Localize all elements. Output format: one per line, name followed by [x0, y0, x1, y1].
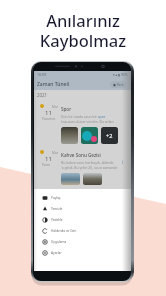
staticText: 'a gittik. Bu şehri 26, uzun zamandır ma… [61, 165, 122, 170]
button[interactable]: Hakkında ve Geri [34, 225, 131, 236]
staticText: Mar [52, 151, 58, 155]
button[interactable] [83, 173, 102, 185]
button[interactable]: +2 [101, 127, 118, 144]
staticText: 11 [45, 155, 52, 163]
staticText: 10:09 [37, 72, 47, 77]
staticText: Dün bir arada uzun bir [61, 114, 98, 119]
button[interactable]: Ayarlar [34, 247, 131, 258]
staticText: Mar [52, 105, 58, 109]
button[interactable]: Paylaş [34, 192, 131, 203]
staticText: Ayarlar [51, 251, 62, 255]
staticText: Hakkında ve Geri [51, 229, 77, 233]
button[interactable]: Temizle [34, 203, 131, 214]
staticText: Temizle [51, 207, 63, 211]
staticText: Zaman Tüneli [37, 81, 70, 88]
staticText: Pazar [42, 163, 51, 167]
staticText: Uygulama [51, 240, 67, 244]
staticText: Bu kahve sonu harikaydı. Ailemle beraber [61, 160, 122, 165]
staticText: Paylaş [51, 196, 61, 200]
button[interactable]: ● Yeni [110, 81, 126, 88]
staticText: 11 [45, 109, 52, 117]
staticText: koşusunu karar verdim. Bu anları daha fa… [61, 119, 122, 124]
staticText: Yedekle [51, 218, 63, 222]
staticText: 2021 [37, 92, 48, 98]
staticText: ● Yeni [113, 82, 124, 87]
button[interactable] [81, 127, 98, 144]
staticText: +2 [106, 132, 113, 139]
staticText: spor [98, 114, 106, 119]
button[interactable]: Uygulama [34, 236, 131, 247]
button[interactable] [61, 127, 78, 144]
staticText: Spor [61, 106, 72, 112]
staticText: Kahve Sonu Gezisi [61, 152, 101, 158]
staticText: Anılarınız Kaybolmaz [0, 9, 166, 52]
button[interactable] [61, 173, 80, 185]
staticText: Pazartesi [42, 117, 56, 121]
button[interactable]: Yedekle [34, 214, 131, 225]
staticText: ▾ ▴ ▮ 93% [113, 72, 128, 77]
